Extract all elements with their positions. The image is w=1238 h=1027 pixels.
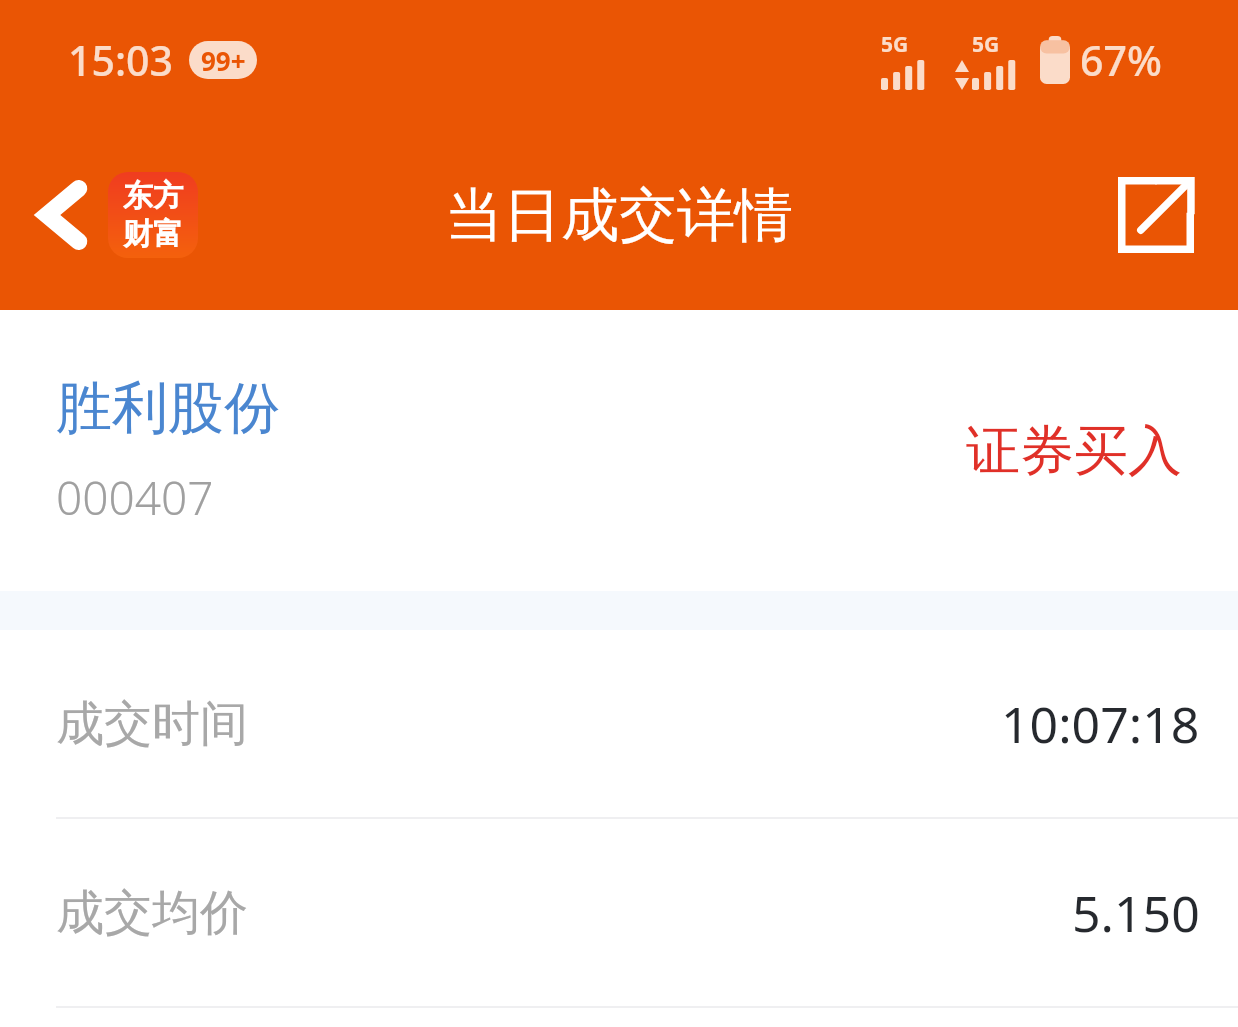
staticText: 东方 [123, 177, 183, 215]
staticText: 成交均价 [56, 883, 248, 943]
button[interactable]: Share [1106, 165, 1206, 265]
staticText: 000407 [56, 466, 214, 529]
button[interactable]: 成交均价 [0, 819, 1238, 1006]
staticText: 当日成交详情 [445, 179, 793, 252]
staticText: 胜利股份 [56, 373, 280, 444]
staticText: 5G [881, 30, 909, 59]
staticText: 财富 [123, 215, 183, 253]
staticText: 10:07:18 [1001, 690, 1200, 758]
staticText: 99+ [201, 43, 246, 78]
button[interactable]: East Money [108, 172, 198, 258]
button[interactable]: 胜利股份 [0, 310, 1238, 591]
staticText: 成交时间 [56, 694, 248, 754]
button[interactable]: 成交时间 [0, 630, 1238, 817]
staticText: 证券买入 [966, 417, 1182, 485]
staticText: 5.150 [1072, 879, 1200, 947]
button[interactable]: Back [14, 167, 110, 263]
staticText: 67% [1080, 32, 1162, 88]
staticText: 15:03 [68, 32, 173, 88]
staticText: 5G [972, 30, 1000, 59]
